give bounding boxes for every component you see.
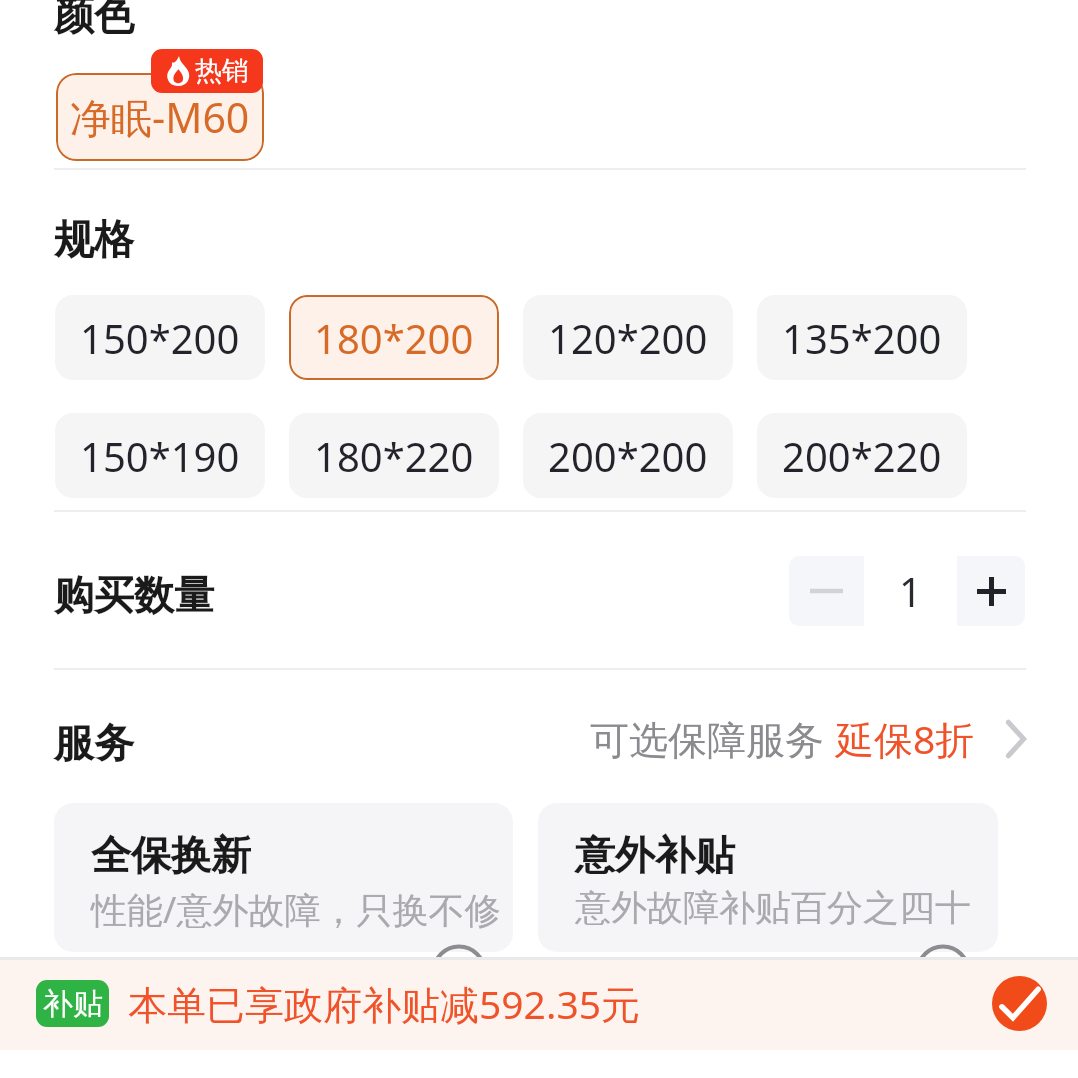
- staticText: 意外补贴: [575, 830, 735, 880]
- staticText: 颜色: [54, 0, 134, 40]
- staticText: 135*200: [782, 311, 942, 365]
- staticText: 180*200: [314, 311, 474, 365]
- button[interactable]: 180*220: [289, 413, 499, 498]
- button[interactable]: 200*220: [757, 413, 967, 498]
- staticText: 全保换新: [91, 830, 251, 880]
- button[interactable]: 120*200: [523, 295, 733, 380]
- staticText: 购买数量: [54, 570, 214, 620]
- button[interactable]: 全保换新: [54, 803, 513, 952]
- staticText: 200*220: [782, 429, 942, 483]
- staticText: 本单已享政府补贴减592.35元: [128, 977, 640, 1030]
- button[interactable]: Decrease quantity: [789, 556, 864, 626]
- button[interactable]: 补贴: [0, 960, 1078, 1050]
- staticText: 意外故障补贴百分之四十: [575, 885, 971, 930]
- button[interactable]: 意外补贴: [538, 803, 998, 952]
- staticText: 120*200: [548, 311, 708, 365]
- staticText: 可选保障服务: [590, 712, 835, 765]
- staticText: 规格: [54, 214, 134, 264]
- button[interactable]: 可选保障服务: [590, 712, 1028, 765]
- button[interactable]: Increase quantity: [957, 556, 1025, 626]
- button[interactable]: 200*200: [523, 413, 733, 498]
- other: More services: [1004, 718, 1028, 760]
- staticText: 1: [899, 564, 922, 618]
- staticText: 180*220: [314, 429, 474, 483]
- button[interactable]: 150*200: [55, 295, 265, 380]
- staticText: 200*200: [548, 429, 708, 483]
- staticText: 150*190: [80, 429, 240, 483]
- staticText: 服务: [54, 718, 134, 768]
- button[interactable]: 150*190: [55, 413, 265, 498]
- staticText: 延保8折: [835, 712, 975, 765]
- button[interactable]: 135*200: [757, 295, 967, 380]
- staticText: 补贴: [43, 985, 103, 1023]
- staticText: 净眠-M60: [70, 89, 250, 145]
- staticText: 热销: [195, 54, 249, 88]
- button[interactable]: 净眠-M60: [56, 73, 264, 161]
- staticText: 150*200: [80, 311, 240, 365]
- staticText: 性能/意外故障，只换不修: [91, 885, 501, 934]
- button[interactable]: 180*200: [289, 295, 499, 380]
- other: Subsidy applied: [992, 976, 1047, 1031]
